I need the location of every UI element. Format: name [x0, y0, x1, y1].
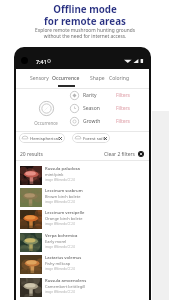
- button[interactable]: Russula amoenolens: [20, 278, 148, 300]
- staticText: Russula amoenolens: [45, 278, 87, 284]
- button[interactable]: Hemispherical: [19, 133, 65, 143]
- button[interactable]: Clear 2 filters: [104, 150, 144, 158]
- staticText: Sensory: [30, 75, 49, 82]
- staticText: Fishy milkcap: [45, 261, 71, 266]
- staticText: Growth: [83, 118, 101, 125]
- button[interactable]: Shape: [84, 70, 110, 87]
- staticText: Filters: [116, 118, 130, 125]
- staticText: mint/pink: [45, 172, 64, 177]
- staticText: Filters: [116, 92, 130, 99]
- button[interactable]: Season: [68, 102, 136, 115]
- staticText: image: Wikimedia CC 2.0: [45, 290, 75, 294]
- staticText: Orange birch bolete: [45, 216, 83, 221]
- button[interactable]: Verpa bohemica: [20, 233, 148, 255]
- staticText: image: Wikimedia CC 2.0: [45, 245, 75, 249]
- button[interactable]: Lactarius volemus: [20, 255, 148, 277]
- button[interactable]: Growth: [68, 115, 136, 128]
- staticText: Occurrence: [52, 75, 80, 82]
- button[interactable]: Russula paludosa: [20, 166, 148, 188]
- staticText: Rarity: [83, 92, 97, 99]
- staticText: 7:41: [36, 58, 47, 65]
- staticText: Occurrence: [34, 120, 58, 126]
- staticText: Brown birch bolete: [45, 194, 81, 199]
- staticText: Camembert brittlegill: [45, 284, 86, 289]
- staticText: Hemispherical: [30, 135, 59, 141]
- button[interactable]: Sensory: [26, 70, 52, 87]
- staticText: Early morel: [45, 239, 67, 244]
- staticText: Explore remote mushroom hunting grounds …: [35, 27, 135, 39]
- button[interactable]: Leccinum scabrum: [20, 188, 148, 210]
- staticText: image: Wikimedia CC 2.0: [45, 178, 75, 182]
- staticText: Coloring: [109, 75, 130, 82]
- staticText: Verpa bohemica: [45, 233, 78, 239]
- staticText: Forest soils: [83, 135, 106, 141]
- staticText: Lactarius volemus: [45, 255, 82, 261]
- staticText: Shape: [90, 75, 105, 82]
- staticText: image: Wikimedia CC 2.0: [45, 200, 75, 204]
- staticText: Clear 2 filters: [104, 151, 135, 158]
- other: Occurrence: [39, 101, 54, 116]
- button[interactable]: Forest soils: [72, 133, 110, 143]
- staticText: image: Wikimedia CC 2.0: [45, 267, 75, 271]
- staticText: Season: [83, 105, 100, 112]
- staticText: Leccinum versipelle: [45, 210, 85, 216]
- button[interactable]: Coloring: [108, 70, 131, 87]
- button[interactable]: Rarity: [68, 89, 136, 102]
- staticText: 20 results: [20, 151, 43, 158]
- button[interactable]: Leccinum versipelle: [20, 210, 148, 232]
- staticText: Leccinum scabrum: [45, 188, 83, 194]
- staticText: image: Wikimedia CC 2.0: [45, 222, 75, 226]
- button[interactable]: Occurrence: [52, 70, 80, 87]
- staticText: Russula paludosa: [45, 166, 80, 172]
- staticText: Offline mode for remote areas: [44, 3, 126, 28]
- button[interactable]: Occurrence: [24, 90, 68, 130]
- staticText: Filters: [116, 105, 130, 112]
